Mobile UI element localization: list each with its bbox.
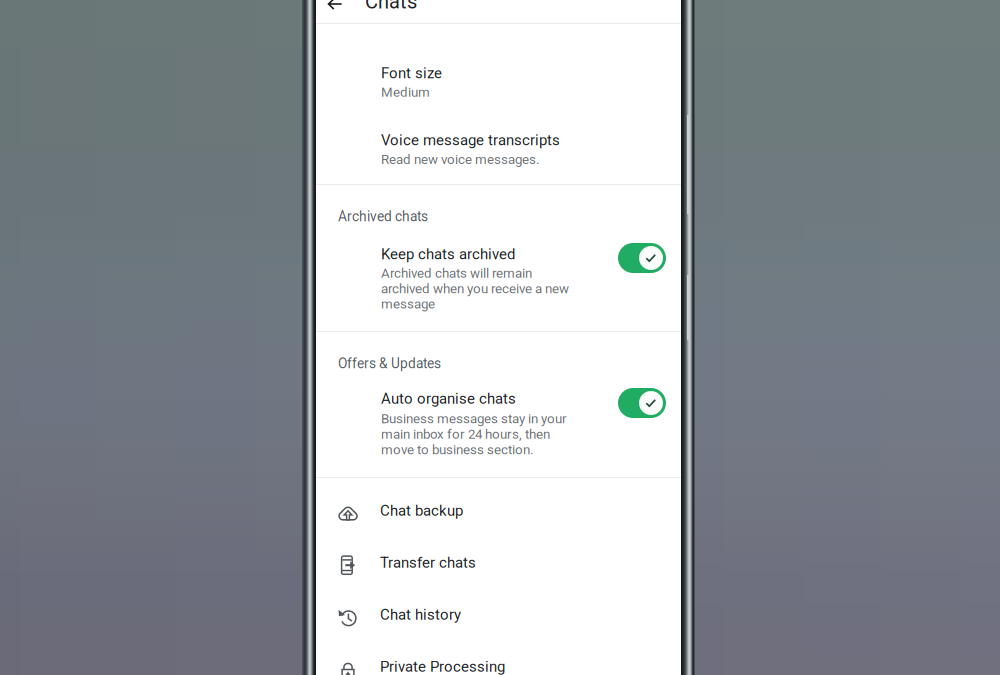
staticText: Business messages stay in your <box>381 411 567 427</box>
staticText: Chat backup <box>380 502 463 519</box>
button[interactable] <box>316 0 681 84</box>
staticText: Archived chats will remain <box>381 265 532 281</box>
button[interactable]: Chat backup <box>316 488 681 540</box>
button[interactable] <box>316 0 681 84</box>
staticText: Auto organise chats <box>381 390 516 407</box>
button[interactable]: Chat history <box>316 592 681 644</box>
staticText: Keep chats archived <box>381 245 515 263</box>
staticText: Voice message transcripts <box>381 131 560 149</box>
staticText: Private Processing <box>380 658 505 675</box>
staticText: Offers & Updates <box>338 355 441 371</box>
staticText: Font size <box>381 64 442 82</box>
button[interactable]: Private Processing <box>316 644 681 675</box>
staticText: Archived chats <box>338 208 428 224</box>
staticText: Chats <box>365 0 417 13</box>
staticText: message <box>381 296 435 312</box>
button[interactable]: Back <box>316 0 354 30</box>
staticText: Transfer chats <box>380 554 476 571</box>
staticText: main inbox for 24 hours, then <box>381 426 550 442</box>
staticText: Read new voice messages. <box>381 152 540 167</box>
button[interactable]: Transfer chats <box>316 540 681 592</box>
staticText: move to business section. <box>381 442 534 457</box>
staticText: archived when you receive a new <box>381 281 569 296</box>
button[interactable] <box>316 0 681 54</box>
staticText: Medium <box>381 84 430 100</box>
button[interactable] <box>316 0 681 54</box>
staticText: Chat history <box>380 606 461 623</box>
